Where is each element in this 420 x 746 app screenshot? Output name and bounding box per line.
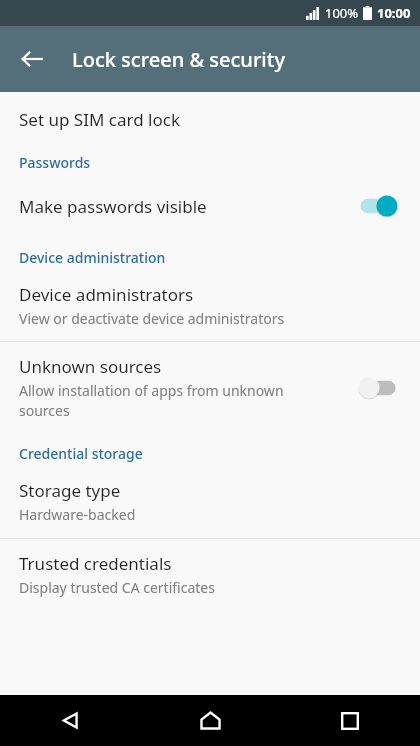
staticText: Device administration — [19, 248, 166, 267]
button[interactable]: Toggle on — [352, 188, 404, 224]
button[interactable]: Storage type — [0, 477, 420, 526]
staticText: Unknown sources — [19, 355, 162, 378]
staticText: Display trusted CA certificates — [19, 578, 215, 597]
button[interactable]: Unknown sources — [0, 353, 420, 422]
staticText: 100% — [325, 4, 359, 22]
staticText: View or deactivate device administrators — [19, 309, 285, 328]
staticText: Storage type — [19, 479, 121, 502]
staticText: Allow installation of apps from unknown … — [19, 381, 319, 420]
button[interactable]: Home — [140, 695, 280, 746]
button[interactable]: Back — [8, 35, 56, 83]
staticText: Hardware-backed — [19, 505, 136, 524]
button[interactable]: Recent apps — [280, 695, 420, 746]
button[interactable]: Device administrators — [0, 281, 420, 330]
staticText: 10:00 — [377, 4, 411, 22]
staticText: Make passwords visible — [19, 195, 207, 218]
staticText: Credential storage — [19, 444, 143, 463]
staticText: Lock screen & security — [72, 46, 285, 73]
button[interactable]: Trusted credentials — [0, 550, 420, 599]
staticText: Set up SIM card lock — [19, 108, 180, 131]
button[interactable]: Make passwords visible — [0, 186, 420, 226]
button[interactable]: Back — [0, 695, 140, 746]
button[interactable]: Set up SIM card lock — [0, 106, 420, 133]
staticText: Trusted credentials — [19, 552, 172, 575]
button[interactable]: Toggle off — [352, 370, 404, 406]
staticText: Device administrators — [19, 283, 194, 306]
staticText: Passwords — [19, 153, 91, 172]
